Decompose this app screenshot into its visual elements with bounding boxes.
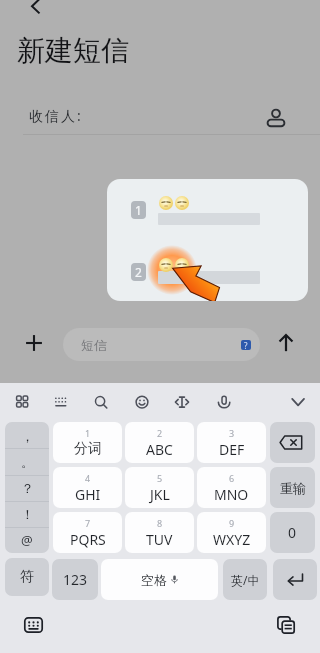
staticText: 新建短信 bbox=[17, 33, 129, 68]
staticText: 8 bbox=[157, 517, 163, 529]
staticText: 2 bbox=[135, 264, 142, 280]
staticText: 收信人: bbox=[29, 106, 83, 125]
button[interactable]: Stickers bbox=[129, 388, 157, 416]
button[interactable]: Text cursor bbox=[169, 388, 197, 416]
staticText: 重输 bbox=[280, 480, 306, 496]
staticText: ！ bbox=[21, 506, 34, 522]
button[interactable]: Back bbox=[28, 0, 52, 14]
button[interactable]: 0 bbox=[270, 512, 315, 553]
staticText: ABC bbox=[146, 440, 173, 459]
staticText: 6 bbox=[229, 472, 235, 484]
staticText: GHI bbox=[75, 485, 101, 504]
button[interactable]: 2 bbox=[125, 422, 194, 463]
button[interactable]: 1 bbox=[107, 179, 308, 301]
button[interactable]: Send bbox=[274, 331, 298, 355]
staticText: WXYZ bbox=[213, 530, 251, 549]
button[interactable]: 符 bbox=[5, 558, 49, 596]
button[interactable]: Search bbox=[88, 388, 116, 416]
button[interactable]: Add attachment bbox=[22, 331, 46, 355]
staticText: 123 bbox=[63, 570, 88, 589]
button[interactable]: Switch keyboard bbox=[24, 617, 43, 633]
button[interactable]: 8 bbox=[125, 512, 194, 553]
staticText: DEF bbox=[219, 440, 245, 459]
staticText: ？ bbox=[21, 480, 34, 496]
staticText: 4 bbox=[85, 472, 91, 484]
staticText: 1 bbox=[85, 427, 91, 439]
button[interactable]: 6 bbox=[197, 467, 266, 508]
staticText: PQRS bbox=[70, 530, 106, 549]
staticText: 5 bbox=[157, 472, 163, 484]
button[interactable]: 123 bbox=[52, 559, 98, 600]
button[interactable]: Choose contact bbox=[265, 102, 287, 124]
button[interactable]: 短信 bbox=[63, 328, 260, 361]
staticText: @ bbox=[21, 531, 33, 549]
button[interactable]: 英/中 bbox=[223, 559, 267, 600]
staticText: 7 bbox=[85, 517, 91, 529]
button[interactable]: 3 bbox=[197, 422, 266, 463]
button[interactable]: 5 bbox=[125, 467, 194, 508]
button[interactable]: 1 bbox=[53, 422, 122, 463]
button[interactable]: 重输 bbox=[270, 467, 315, 508]
staticText: 。 bbox=[21, 454, 34, 470]
staticText: 符 bbox=[20, 568, 34, 586]
button[interactable]: Clipboard bbox=[277, 616, 295, 634]
staticText: 3 bbox=[229, 427, 235, 439]
staticText: 0 bbox=[288, 523, 297, 542]
staticText: JKL bbox=[150, 485, 170, 504]
button[interactable]: Emoji panel bbox=[9, 388, 37, 416]
button[interactable]: 9 bbox=[197, 512, 266, 553]
staticText: 空格 bbox=[141, 572, 167, 588]
button[interactable]: ， bbox=[5, 422, 49, 553]
button[interactable]: Keyboard layout bbox=[47, 388, 75, 416]
staticText: 1 bbox=[135, 202, 142, 218]
staticText: 2 bbox=[157, 427, 163, 439]
staticText: TUV bbox=[146, 530, 173, 549]
staticText: 短信 bbox=[81, 337, 107, 353]
button[interactable]: Voice input bbox=[211, 388, 239, 416]
staticText: 分词 bbox=[74, 440, 102, 458]
button[interactable]: Backspace bbox=[270, 422, 315, 463]
staticText: MNO bbox=[214, 485, 249, 504]
staticText: 9 bbox=[229, 517, 235, 529]
button[interactable]: Enter bbox=[273, 559, 317, 600]
button[interactable]: 空格 bbox=[101, 559, 218, 600]
staticText: ， bbox=[21, 428, 34, 444]
button[interactable]: 4 bbox=[53, 467, 122, 508]
staticText: 英/中 bbox=[231, 572, 260, 588]
button[interactable]: Hide keyboard bbox=[285, 388, 313, 416]
staticText: ? bbox=[244, 340, 248, 350]
button[interactable]: 7 bbox=[53, 512, 122, 553]
